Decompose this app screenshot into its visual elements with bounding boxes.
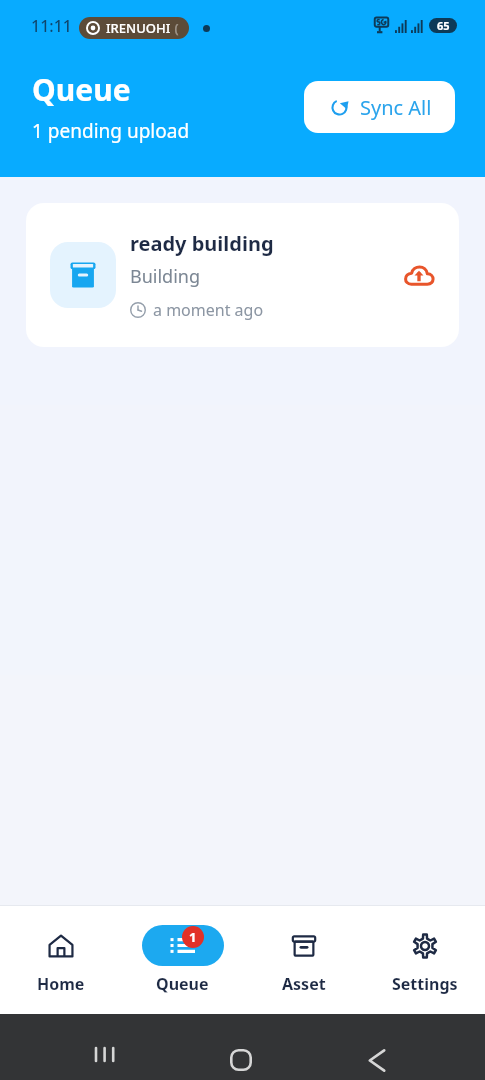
staticText: 1 pending upload [32,118,190,144]
staticText: Sync All [360,94,432,121]
button[interactable]: Upload [397,253,441,297]
button[interactable]: Home [0,906,122,1014]
staticText: 65 [437,18,450,33]
button[interactable]: Recents [94,1043,118,1067]
staticText: a moment ago [153,299,264,321]
button[interactable]: Sync All [304,81,455,133]
staticText: Queue [156,973,209,995]
button[interactable]: 1 [122,906,243,1014]
button[interactable]: Back [368,1049,386,1072]
staticText: Settings [392,973,458,995]
staticText: Building [130,264,201,289]
staticText: Queue [32,69,131,110]
staticText: ready building [130,230,274,257]
staticText: Home [37,973,85,995]
staticText: ( [171,19,179,37]
button[interactable]: Settings [364,906,485,1014]
staticText: 1 [189,928,197,946]
staticText: IRENUOHI [106,19,171,37]
button[interactable]: ready building [26,203,459,347]
button[interactable]: Home [230,1049,252,1071]
button[interactable]: Asset [243,906,364,1014]
staticText: Asset [282,973,326,995]
staticText: 11:11 [31,15,72,37]
